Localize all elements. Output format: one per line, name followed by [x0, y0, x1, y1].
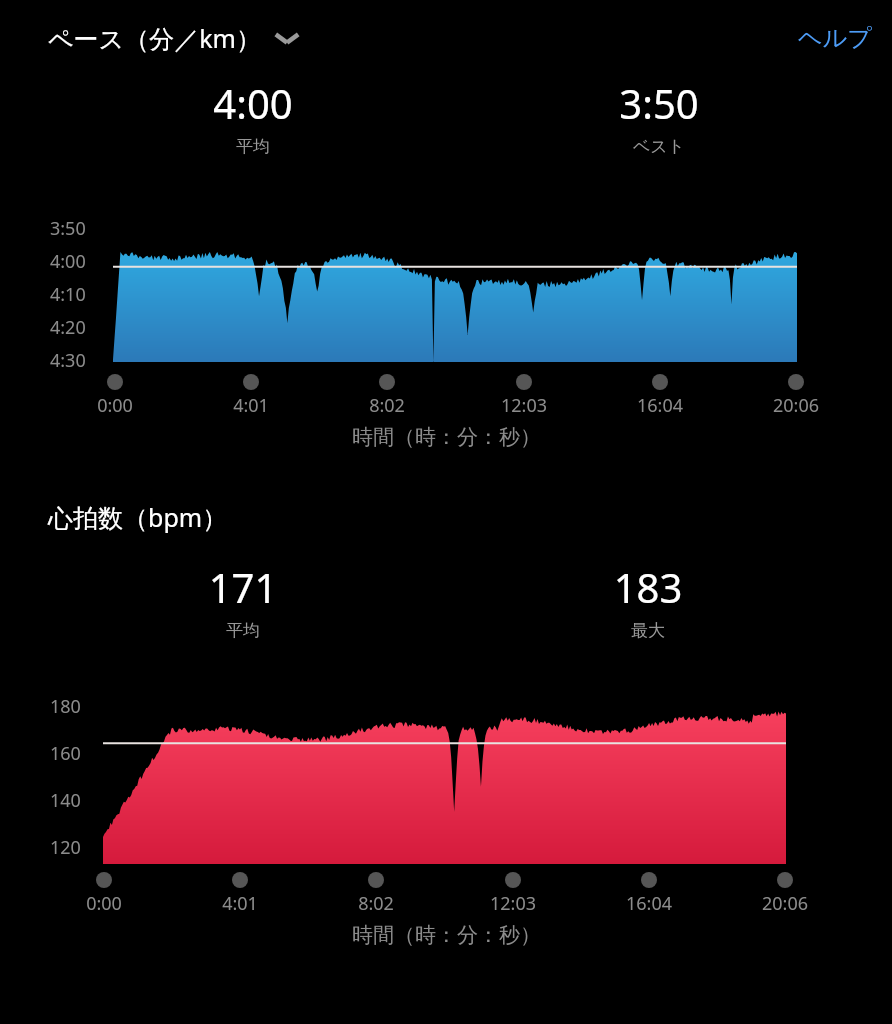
staticText: 0:00	[59, 891, 149, 916]
staticText: ヘルプ	[798, 23, 872, 53]
staticText: 20:06	[751, 393, 841, 418]
staticText: ペース（分／km）	[48, 21, 261, 55]
staticText: 120	[50, 835, 81, 860]
staticText: 4:01	[195, 891, 285, 916]
staticText: 8:02	[342, 393, 432, 418]
staticText: 4:10	[50, 282, 86, 307]
staticText: 最大	[568, 620, 728, 641]
staticText: 12:03	[468, 891, 558, 916]
staticText: 12:03	[479, 393, 569, 418]
other: Change metric	[273, 29, 301, 47]
button[interactable]: ヘルプ	[778, 15, 892, 61]
button[interactable]: ペース（分／km）	[0, 15, 311, 61]
staticText: 時間（時：分：秒）	[352, 922, 541, 948]
staticText: 20:06	[740, 891, 830, 916]
staticText: 4:00	[173, 76, 333, 130]
staticText: 時間（時：分：秒）	[352, 424, 541, 450]
staticText: 4:00	[50, 249, 86, 274]
staticText: 16:04	[604, 891, 694, 916]
button[interactable]: 心拍数（bpm）	[0, 496, 892, 538]
staticText: 160	[50, 741, 81, 766]
staticText: 平均	[163, 620, 323, 641]
staticText: 4:20	[50, 315, 86, 340]
staticText: 8:02	[331, 891, 421, 916]
staticText: 140	[50, 788, 81, 813]
staticText: 4:01	[206, 393, 296, 418]
staticText: 180	[50, 694, 81, 719]
staticText: 3:50	[50, 216, 86, 241]
staticText: 16:04	[615, 393, 705, 418]
staticText: 171	[163, 560, 323, 614]
staticText: 4:30	[50, 348, 86, 373]
staticText: ベスト	[579, 136, 739, 157]
staticText: 3:50	[579, 76, 739, 130]
staticText: 心拍数（bpm）	[48, 500, 228, 534]
staticText: 183	[568, 560, 728, 614]
staticText: 平均	[173, 136, 333, 157]
staticText: 0:00	[70, 393, 160, 418]
